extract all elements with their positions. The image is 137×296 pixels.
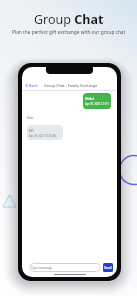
button[interactable]: Send <box>103 263 113 272</box>
staticText: Type a message <box>31 266 52 270</box>
button[interactable]: Hi! <box>27 125 63 140</box>
staticText: Back <box>29 83 38 88</box>
staticText: Hello! <box>85 96 95 101</box>
staticText: Apr 28, 2023 12:17 AM <box>85 102 109 106</box>
staticText: Group Chat - Family Exchange <box>44 83 98 88</box>
staticText: Hi! <box>29 128 34 133</box>
staticText: Plan the perfect gift exchange with our … <box>12 29 126 36</box>
button[interactable]: Hello! <box>83 93 111 109</box>
button[interactable]: Back <box>22 80 40 90</box>
staticText: Send <box>104 266 112 270</box>
staticText: Group Chat <box>34 11 104 28</box>
button[interactable]: Type a message <box>29 263 101 272</box>
staticText: Matt <box>27 116 34 120</box>
staticText: Apr 28, 2023 10:29 AM <box>29 134 57 138</box>
